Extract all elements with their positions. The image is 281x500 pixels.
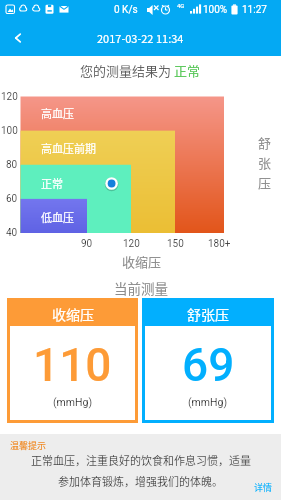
staticText: 100% [203, 4, 228, 16]
staticText: (mmHg) [188, 396, 228, 408]
button[interactable]: Back [0, 20, 36, 56]
staticText: 舒张压 [187, 304, 229, 324]
staticText: 高血压 [41, 105, 74, 121]
staticText: 温馨提示 [10, 439, 47, 452]
staticText: 100 [1, 125, 18, 137]
button[interactable]: 详情 [254, 481, 273, 494]
staticText: 150 [167, 238, 184, 250]
staticText: 80 [6, 159, 18, 171]
staticText: 69 [182, 338, 235, 392]
staticText: 正常 [174, 61, 201, 80]
staticText: 110 [33, 338, 112, 392]
staticText: 当前测量 [114, 278, 168, 298]
staticText: 正常 [41, 175, 63, 191]
staticText: 收缩压 [122, 252, 162, 271]
staticText: 90 [81, 238, 93, 250]
staticText: 4G [177, 2, 185, 9]
staticText: 您的测量结果为 [80, 61, 174, 80]
staticText: 高血压前期 [41, 140, 96, 156]
staticText: 2017-03-22 11:34 [97, 30, 184, 46]
staticText: 0 K/s [114, 4, 138, 16]
staticText: 压 [258, 173, 272, 192]
staticText: 180+ [208, 238, 231, 250]
staticText: 舒 [258, 133, 272, 152]
staticText: 120 [123, 238, 140, 250]
staticText: 11:27 [242, 4, 267, 16]
staticText: (mmHg) [53, 396, 93, 408]
button[interactable]: 收缩压 [10, 301, 135, 420]
button[interactable]: 舒张压 [145, 301, 271, 420]
staticText: 参加体育锻炼，增强我们的体魄。 [58, 473, 223, 489]
staticText: 低血压 [41, 209, 74, 225]
staticText: 40 [6, 227, 18, 239]
staticText: 60 [6, 193, 18, 205]
staticText: 收缩压 [52, 304, 94, 324]
staticText: 120 [1, 91, 18, 103]
staticText: 正常血压，注重良好的饮食和作息习惯，适量 [31, 452, 251, 468]
staticText: 张 [258, 153, 272, 172]
